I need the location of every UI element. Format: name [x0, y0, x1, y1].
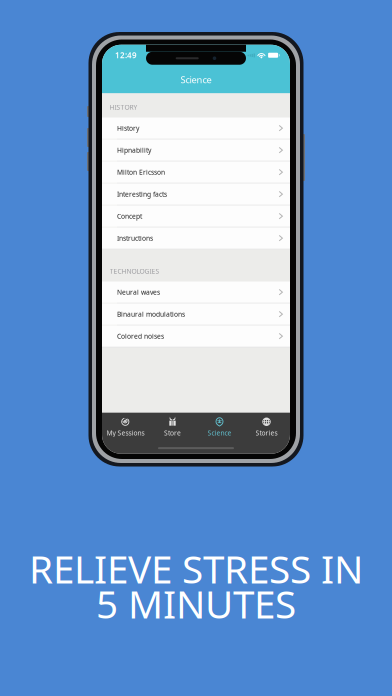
staticText: Concept	[117, 212, 142, 221]
button[interactable]: History	[102, 117, 290, 139]
button[interactable]: Neural waves	[102, 282, 290, 304]
staticText: 12:49	[115, 50, 137, 60]
staticText: Colored noises	[117, 332, 164, 341]
staticText: History	[117, 124, 139, 133]
staticText: Hipnability	[117, 146, 151, 155]
button[interactable]: Binaural modulations	[102, 304, 290, 326]
staticText: My Sessions	[106, 428, 144, 437]
staticText: Stories	[255, 428, 277, 437]
staticText: Instructions	[117, 234, 153, 243]
staticText: Interesting facts	[117, 190, 167, 199]
button[interactable]: Milton Ericsson	[102, 162, 290, 184]
button[interactable]: Colored noises	[102, 326, 290, 348]
staticText: Neural waves	[117, 288, 160, 297]
staticText: RELIEVE STRESS IN	[29, 543, 363, 594]
button[interactable]: Science	[196, 413, 243, 441]
button[interactable]: Concept	[102, 206, 290, 228]
staticText: Binaural modulations	[117, 310, 185, 319]
button[interactable]: Interesting facts	[102, 184, 290, 206]
button[interactable]: Stories	[243, 413, 290, 441]
button[interactable]: Hipnability	[102, 140, 290, 162]
staticText: Science	[180, 73, 211, 86]
staticText: 5 MINUTES	[96, 578, 296, 629]
button[interactable]: My Sessions	[102, 413, 149, 441]
button[interactable]: Store	[149, 413, 196, 441]
staticText: Store	[164, 428, 181, 437]
staticText: Science	[207, 428, 231, 437]
button[interactable]: Instructions	[102, 228, 290, 250]
staticText: HISTORY	[109, 103, 137, 112]
staticText: Milton Ericsson	[117, 168, 165, 177]
staticText: TECHNOLOGIES	[109, 267, 159, 276]
